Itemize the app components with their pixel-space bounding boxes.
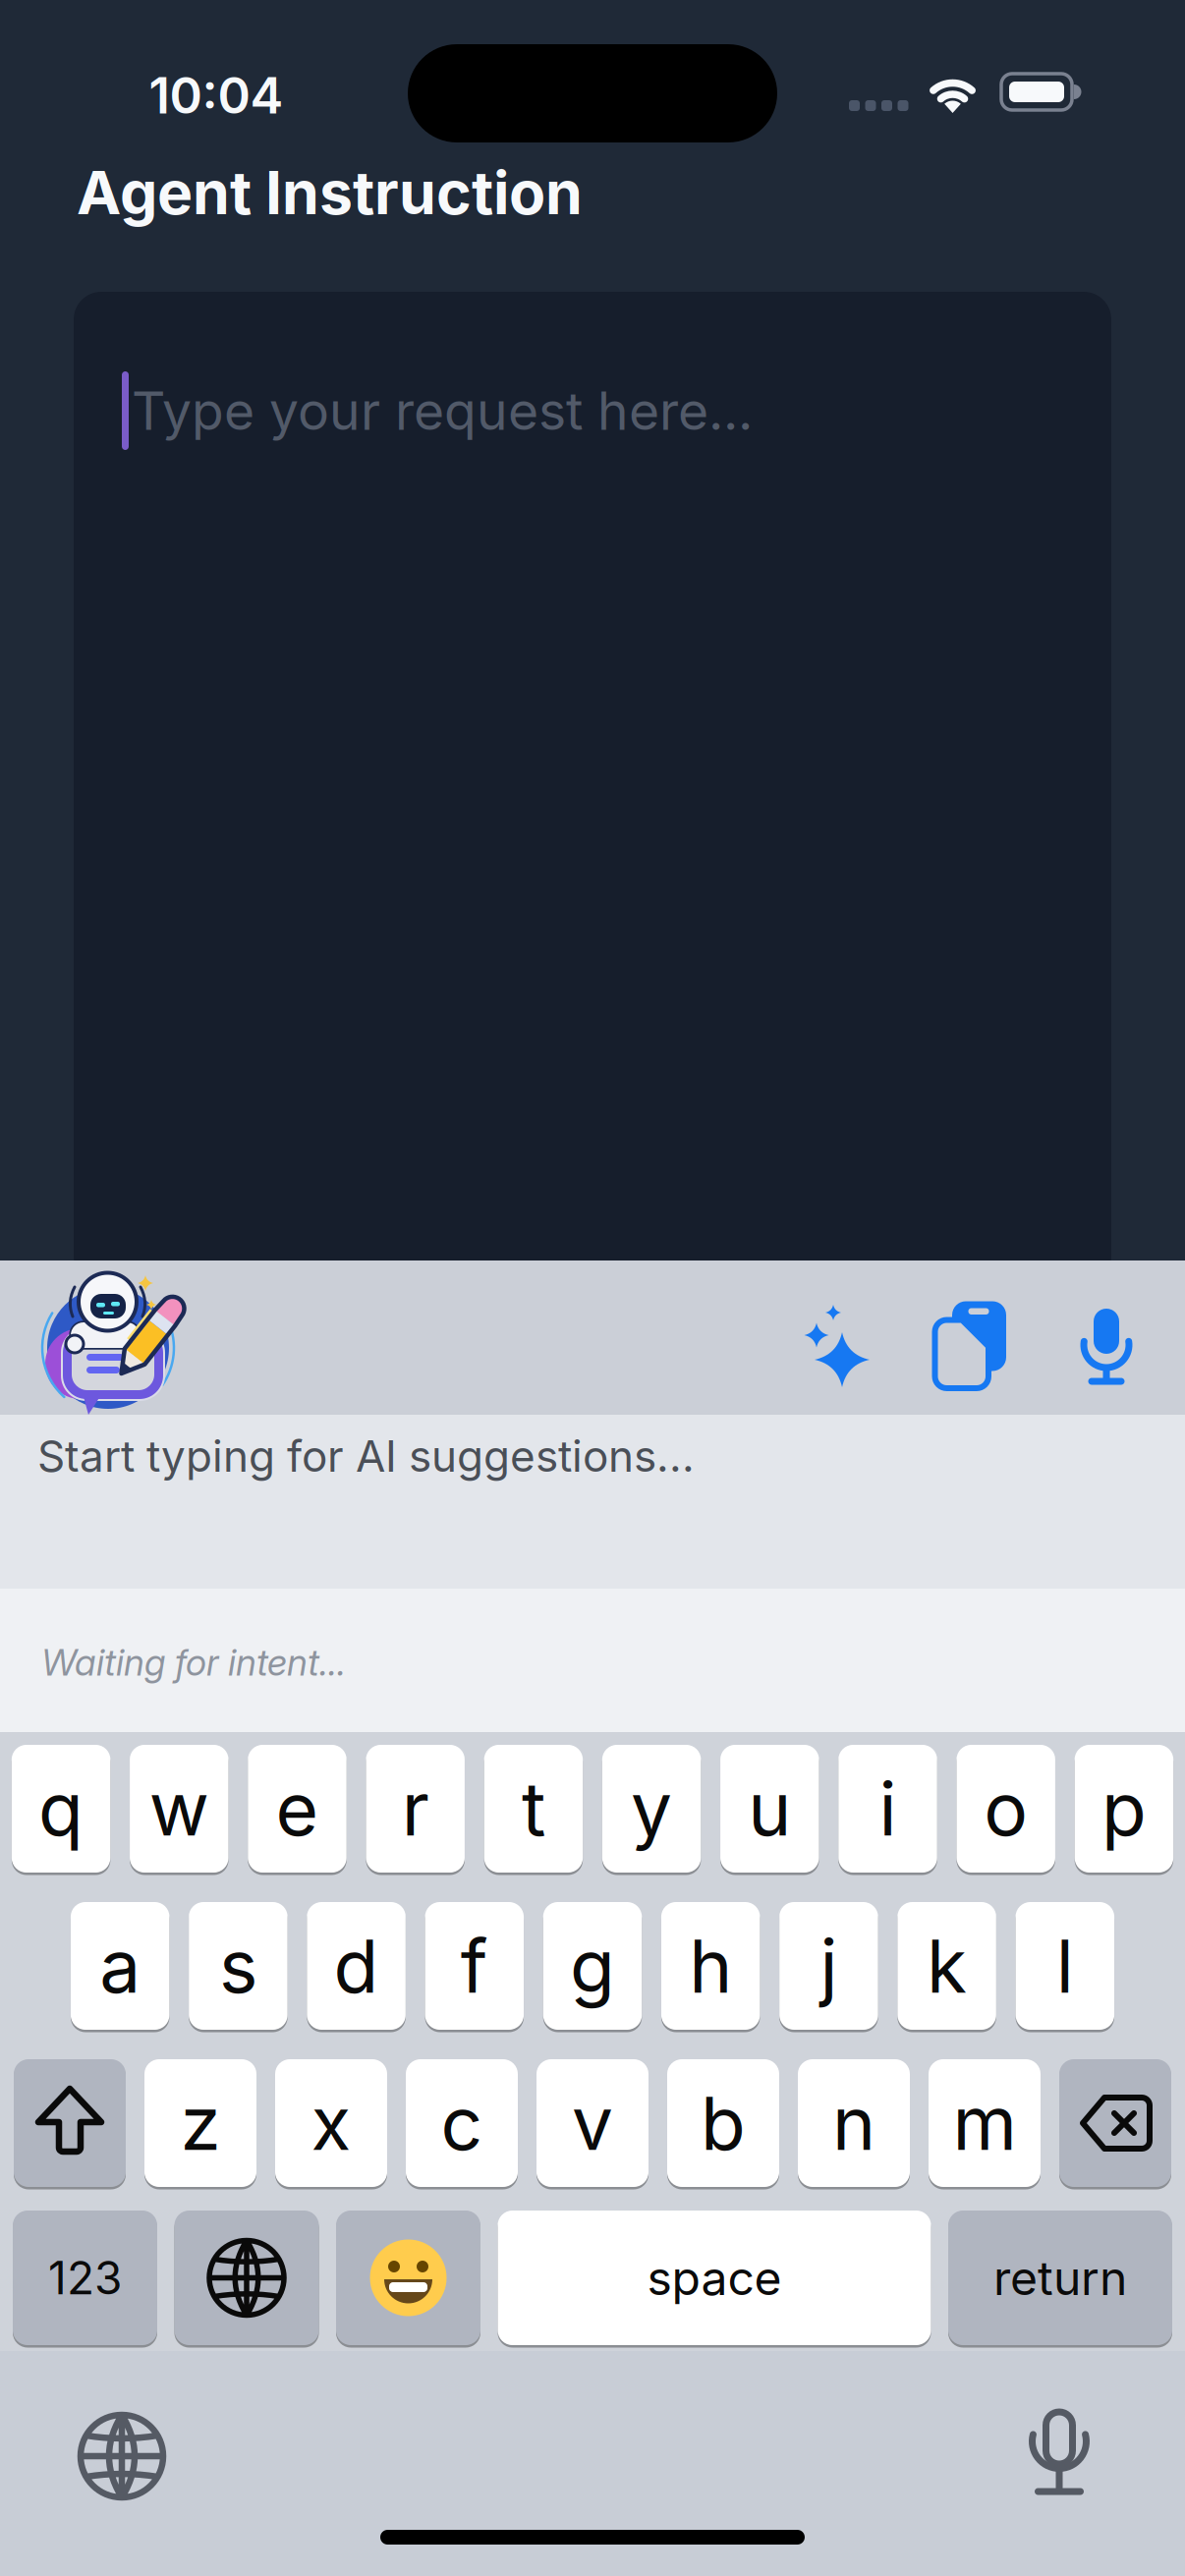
button[interactable]: Next keyboard [174,2211,319,2345]
staticText: f [461,1921,488,2010]
button[interactable]: w [130,1745,229,1873]
staticText: d [334,1921,379,2010]
staticText: h [689,1921,732,2010]
button[interactable]: Paste [926,1299,1014,1393]
staticText: k [927,1921,967,2010]
staticText: e [276,1764,319,1853]
button[interactable]: a [71,1902,169,2030]
button[interactable]: l [1016,1902,1114,2030]
button[interactable]: f [425,1902,524,2030]
button[interactable]: v [536,2059,649,2187]
button[interactable]: r [366,1745,465,1873]
button[interactable]: t [484,1745,583,1873]
staticText: Waiting for intent... [41,1640,346,1685]
staticText: a [99,1921,141,2010]
staticText: t [522,1764,545,1853]
button[interactable]: b [667,2059,779,2187]
button[interactable]: Emoji [336,2211,480,2345]
staticText: w [149,1764,209,1853]
button[interactable]: e [248,1745,347,1873]
staticText: u [748,1764,791,1853]
staticText: s [219,1921,257,2010]
button[interactable]: Keyboard app [31,1269,189,1417]
staticText: q [38,1764,84,1853]
staticText: y [631,1764,672,1853]
staticText: z [180,2079,221,2167]
button[interactable]: s [189,1902,288,2030]
button[interactable]: g [543,1902,642,2030]
button[interactable]: 123 [13,2211,157,2345]
staticText: Agent Instruction [77,157,583,229]
button[interactable]: z [144,2059,256,2187]
button[interactable]: x [275,2059,387,2187]
staticText: Start typing for AI suggestions... [37,1430,695,1482]
staticText: p [1101,1764,1147,1853]
button[interactable]: p [1075,1745,1173,1873]
button[interactable]: c [406,2059,518,2187]
button[interactable]: AI suggestions [794,1302,882,1390]
staticText: l [1056,1921,1074,2010]
button[interactable]: Shift [14,2059,126,2187]
button[interactable]: Voice input [1069,1304,1144,1388]
button[interactable]: u [720,1745,819,1873]
staticText: g [570,1921,615,2010]
staticText: n [832,2079,875,2167]
staticText: o [984,1764,1028,1853]
button[interactable]: y [602,1745,701,1873]
button[interactable]: j [779,1902,878,2030]
staticText: return [993,2249,1127,2306]
staticText: r [402,1764,429,1853]
staticText: m [953,2079,1016,2167]
button[interactable]: space [498,2211,931,2345]
button[interactable]: k [897,1902,996,2030]
button[interactable]: q [12,1745,110,1873]
button[interactable]: Switch keyboard [78,2412,166,2500]
button[interactable]: Delete [1059,2059,1171,2187]
staticText: v [572,2079,613,2167]
staticText: i [879,1764,897,1853]
staticText: x [311,2079,351,2167]
button[interactable]: return [948,2211,1172,2345]
staticText: j [820,1921,838,2010]
button[interactable]: Dictate [1022,2410,1096,2498]
button[interactable]: h [661,1902,760,2030]
staticText: 10:04 [149,65,283,125]
button[interactable]: o [957,1745,1055,1873]
staticText: b [701,2079,746,2167]
staticText: c [441,2079,483,2167]
button[interactable]: i [838,1745,937,1873]
button[interactable]: n [798,2059,910,2187]
button[interactable]: m [929,2059,1041,2187]
staticText: space [647,2249,782,2306]
staticText: 123 [48,2251,122,2305]
staticText: Type your request here... [132,379,753,442]
button[interactable]: d [307,1902,406,2030]
